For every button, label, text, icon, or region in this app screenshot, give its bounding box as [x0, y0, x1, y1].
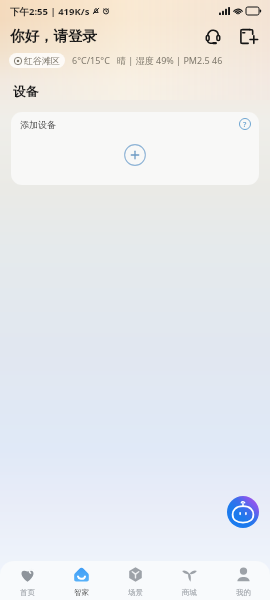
- button[interactable]: Add device: [124, 144, 146, 166]
- staticText: 晴 | 湿度 49% | PM2.5 46: [117, 54, 223, 66]
- staticText: 智家: [74, 588, 89, 597]
- button[interactable]: 我的: [216, 561, 270, 600]
- button[interactable]: 智家: [54, 561, 108, 600]
- staticText: 首页: [20, 588, 35, 597]
- staticText: 红谷滩区: [24, 55, 60, 66]
- button[interactable]: Help: [239, 118, 251, 130]
- staticText: 添加设备: [20, 119, 56, 130]
- staticText: 你好，请登录: [10, 27, 97, 45]
- button[interactable]: 添加设备: [11, 112, 259, 185]
- button[interactable]: 商城: [162, 561, 216, 600]
- staticText: 下午2:55 | 419K/s: [10, 5, 90, 18]
- button[interactable]: AI assistant: [227, 496, 259, 528]
- button[interactable]: 红谷滩区: [9, 53, 65, 68]
- button[interactable]: 首页: [0, 561, 54, 600]
- staticText: 商城: [182, 588, 197, 597]
- staticText: 我的: [236, 588, 251, 597]
- staticText: 场景: [128, 588, 143, 597]
- button[interactable]: Customer support: [201, 24, 225, 48]
- staticText: 6°C/15°C: [72, 54, 110, 66]
- button[interactable]: 场景: [108, 561, 162, 600]
- staticText: ?: [243, 119, 247, 129]
- button[interactable]: Add: [236, 24, 260, 48]
- staticText: 设备: [13, 84, 38, 100]
